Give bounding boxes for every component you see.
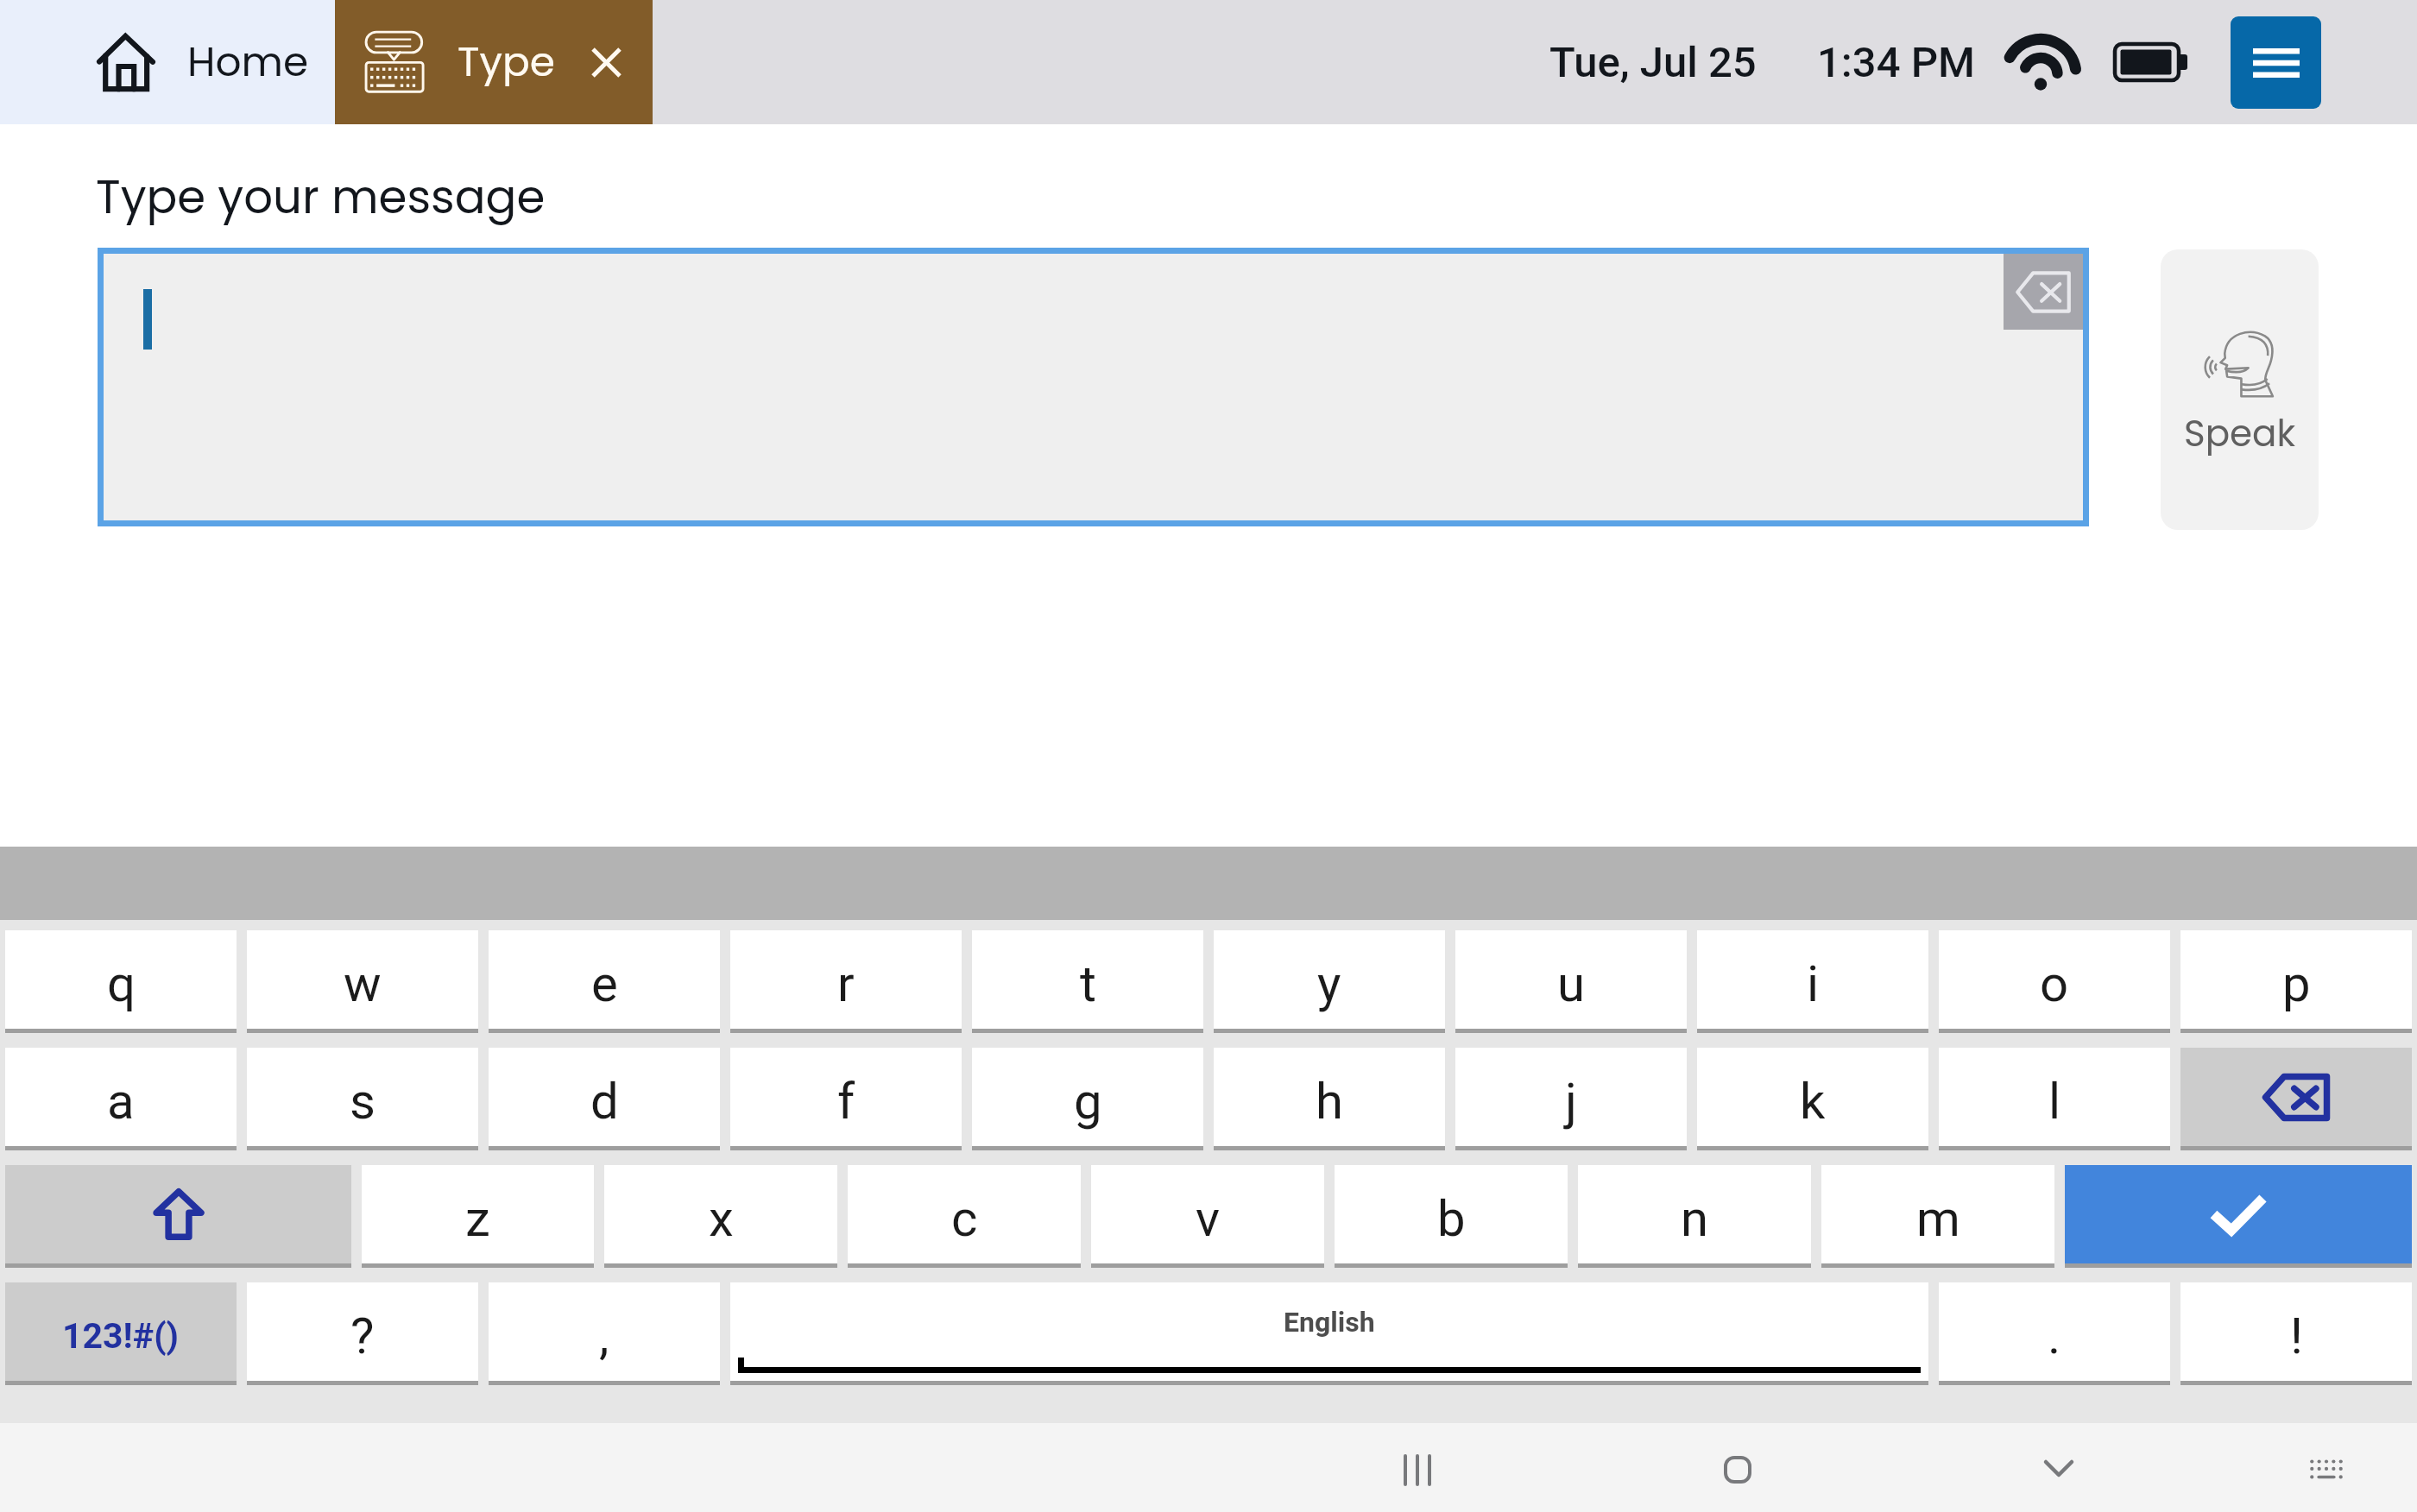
button[interactable]: u <box>1455 930 1687 1029</box>
button[interactable]: t <box>972 930 1203 1029</box>
staticText: o <box>2040 954 2069 1013</box>
staticText: m <box>1916 1189 1960 1248</box>
staticText: j <box>1565 1072 1577 1131</box>
staticText: s <box>350 1072 375 1131</box>
staticText: Type <box>458 34 555 91</box>
button[interactable]: Menu <box>2231 16 2321 109</box>
staticText: Home <box>187 34 309 91</box>
staticText: y <box>1317 954 1341 1013</box>
button[interactable]: Speak <box>2161 249 2319 530</box>
staticText: w <box>344 954 382 1013</box>
button[interactable]: Space <box>730 1282 1928 1381</box>
button[interactable]: ! <box>2180 1282 2412 1381</box>
button[interactable]: i <box>1697 930 1928 1029</box>
button[interactable]: s <box>247 1048 478 1146</box>
button[interactable]: ? <box>247 1282 478 1381</box>
button[interactable]: , <box>489 1282 720 1381</box>
button[interactable]: Recents <box>1366 1427 1469 1512</box>
button[interactable]: l <box>1939 1048 2170 1146</box>
staticText: c <box>951 1189 978 1248</box>
button[interactable]: o <box>1939 930 2170 1029</box>
button[interactable]: Home <box>1686 1427 1789 1512</box>
staticText: n <box>1681 1189 1709 1248</box>
staticText: v <box>1196 1189 1221 1248</box>
staticText: x <box>709 1189 734 1248</box>
staticText: English <box>1284 1306 1375 1339</box>
staticText: 1:34 PM <box>1817 38 1975 87</box>
button[interactable]: Home <box>0 0 335 124</box>
button[interactable]: . <box>1939 1282 2170 1381</box>
button[interactable]: Type <box>335 0 653 124</box>
button[interactable]: b <box>1335 1165 1568 1263</box>
button[interactable]: p <box>2180 930 2412 1029</box>
button[interactable]: Clear text <box>2004 254 2083 330</box>
button[interactable]: w <box>247 930 478 1029</box>
staticText: p <box>2282 954 2311 1013</box>
button[interactable]: 123!#() <box>5 1282 237 1381</box>
button[interactable]: Backspace <box>2180 1048 2412 1146</box>
button[interactable]: x <box>604 1165 837 1263</box>
button[interactable]: c <box>848 1165 1081 1263</box>
staticText: z <box>465 1189 490 1248</box>
button[interactable]: Hide keyboard <box>2007 1425 2111 1511</box>
button[interactable]: z <box>362 1165 594 1263</box>
staticText: q <box>107 954 136 1013</box>
button[interactable]: a <box>5 1048 237 1146</box>
staticText: d <box>590 1072 619 1131</box>
staticText: l <box>2048 1072 2061 1131</box>
button[interactable]: Shift <box>5 1165 351 1263</box>
button[interactable]: Switch keyboard <box>2275 1427 2378 1512</box>
staticText: g <box>1074 1072 1102 1131</box>
staticText: 123!#() <box>62 1315 180 1357</box>
button[interactable]: r <box>730 930 962 1029</box>
staticText: ! <box>2290 1307 2303 1365</box>
staticText: i <box>1807 954 1820 1013</box>
staticText: t <box>1080 954 1096 1013</box>
staticText: . <box>2048 1307 2061 1365</box>
button[interactable]: n <box>1578 1165 1811 1263</box>
button[interactable]: Enter <box>2065 1165 2412 1263</box>
staticText: u <box>1557 954 1585 1013</box>
staticText: , <box>599 1307 609 1365</box>
staticText: k <box>1800 1072 1826 1131</box>
staticText: Tue, Jul 25 <box>1549 38 1757 87</box>
staticText: Speak <box>2184 408 2296 459</box>
button[interactable]: f <box>730 1048 962 1146</box>
staticText: f <box>837 1072 855 1131</box>
button[interactable]: g <box>972 1048 1203 1146</box>
staticText: e <box>591 954 618 1013</box>
button[interactable]: d <box>489 1048 720 1146</box>
staticText: ? <box>350 1307 375 1365</box>
staticText: Type your message <box>96 165 546 229</box>
button[interactable]: h <box>1214 1048 1445 1146</box>
staticText: h <box>1316 1072 1343 1131</box>
button[interactable]: v <box>1091 1165 1324 1263</box>
button[interactable]: j <box>1455 1048 1687 1146</box>
button[interactable]: k <box>1697 1048 1928 1146</box>
button[interactable]: Close Type tab <box>578 35 634 90</box>
staticText: r <box>837 954 855 1013</box>
button[interactable]: y <box>1214 930 1445 1029</box>
staticText: b <box>1437 1189 1466 1248</box>
staticText: a <box>107 1072 135 1131</box>
button[interactable]: Message input field <box>104 254 2083 520</box>
button[interactable]: q <box>5 930 237 1029</box>
button[interactable]: e <box>489 930 720 1029</box>
button[interactable]: m <box>1821 1165 2054 1263</box>
